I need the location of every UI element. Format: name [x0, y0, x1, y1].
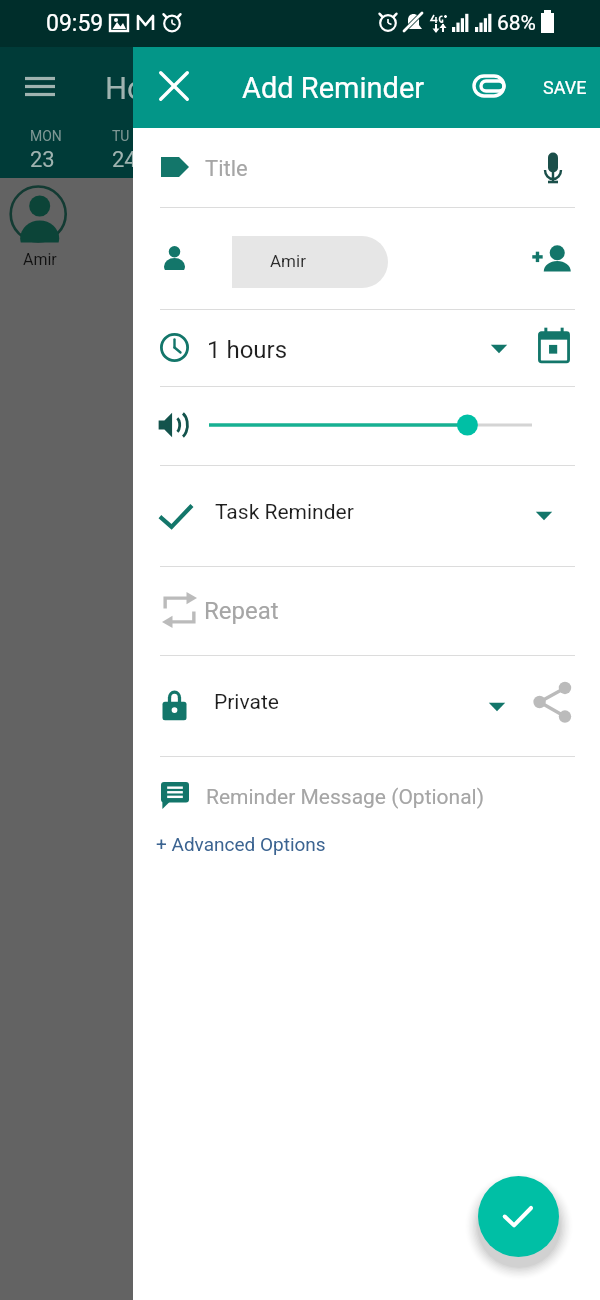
button[interactable]: Private: [151, 675, 481, 743]
button[interactable]: Choose reminder type: [516, 488, 572, 544]
button[interactable]: + Advanced Options: [148, 825, 334, 863]
staticText: MON: [30, 128, 62, 144]
button[interactable]: SAVE: [530, 66, 600, 109]
staticText: Private: [214, 690, 279, 715]
staticText: Amir: [270, 251, 306, 271]
button[interactable]: [203, 402, 533, 448]
button[interactable]: Add person: [525, 234, 577, 286]
staticText: Title: [205, 156, 248, 182]
button[interactable]: Attach file: [464, 61, 514, 111]
staticText: 09:59: [46, 10, 104, 37]
button[interactable]: Choose privacy: [469, 679, 525, 735]
staticText: SAVE: [543, 77, 587, 98]
button[interactable]: Save reminder: [478, 1176, 559, 1257]
staticText: Reminder Message (Optional): [206, 785, 485, 810]
button[interactable]: 1 hours: [151, 319, 491, 383]
staticText: Amir: [23, 250, 57, 269]
staticText: 24: [112, 147, 137, 173]
button[interactable]: Share: [525, 675, 579, 729]
staticText: 68%: [497, 11, 536, 36]
staticText: Add Reminder: [242, 71, 425, 105]
staticText: 1 hours: [207, 336, 288, 364]
button[interactable]: Pick date: [526, 317, 582, 373]
staticText: TU: [112, 128, 130, 144]
button[interactable]: Reminder Message (Optional): [151, 764, 551, 826]
staticText: + Advanced Options: [156, 833, 326, 855]
button[interactable]: Close: [150, 62, 198, 110]
button[interactable]: Voice input: [525, 140, 581, 196]
staticText: Repeat: [204, 597, 279, 625]
staticText: Task Reminder: [215, 500, 354, 525]
button[interactable]: Choose duration: [471, 321, 527, 377]
button[interactable]: Amir: [232, 236, 388, 288]
button[interactable]: Task Reminder: [151, 483, 491, 553]
staticText: Ho: [105, 70, 145, 106]
button[interactable]: Title: [151, 132, 541, 200]
button[interactable]: Repeat: [151, 587, 451, 651]
staticText: 23: [30, 147, 55, 173]
